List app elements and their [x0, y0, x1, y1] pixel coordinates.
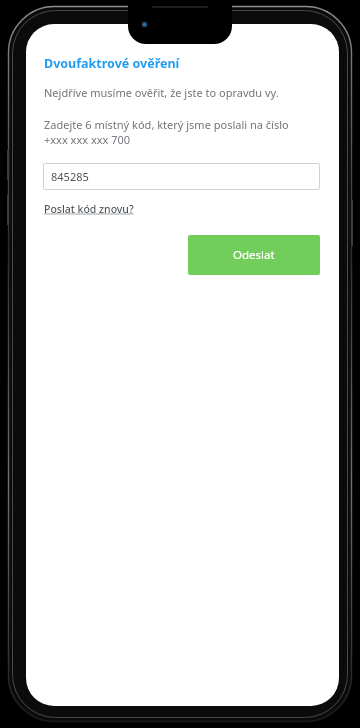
- button[interactable]: Poslat kód znovu?: [44, 202, 134, 216]
- staticText: Poslat kód znovu?: [44, 202, 134, 216]
- button[interactable]: Odeslat: [188, 235, 320, 275]
- staticText: Odeslat: [233, 247, 275, 263]
- button[interactable]: 845285: [43, 163, 320, 190]
- staticText: 845285: [51, 169, 89, 184]
- staticText: Zadejte 6 místný kód, který jsme poslali…: [44, 117, 289, 147]
- staticText: Dvoufaktrové ověření: [44, 55, 180, 72]
- staticText: Nejdříve musíme ověřit, že jste to oprav…: [44, 85, 279, 100]
